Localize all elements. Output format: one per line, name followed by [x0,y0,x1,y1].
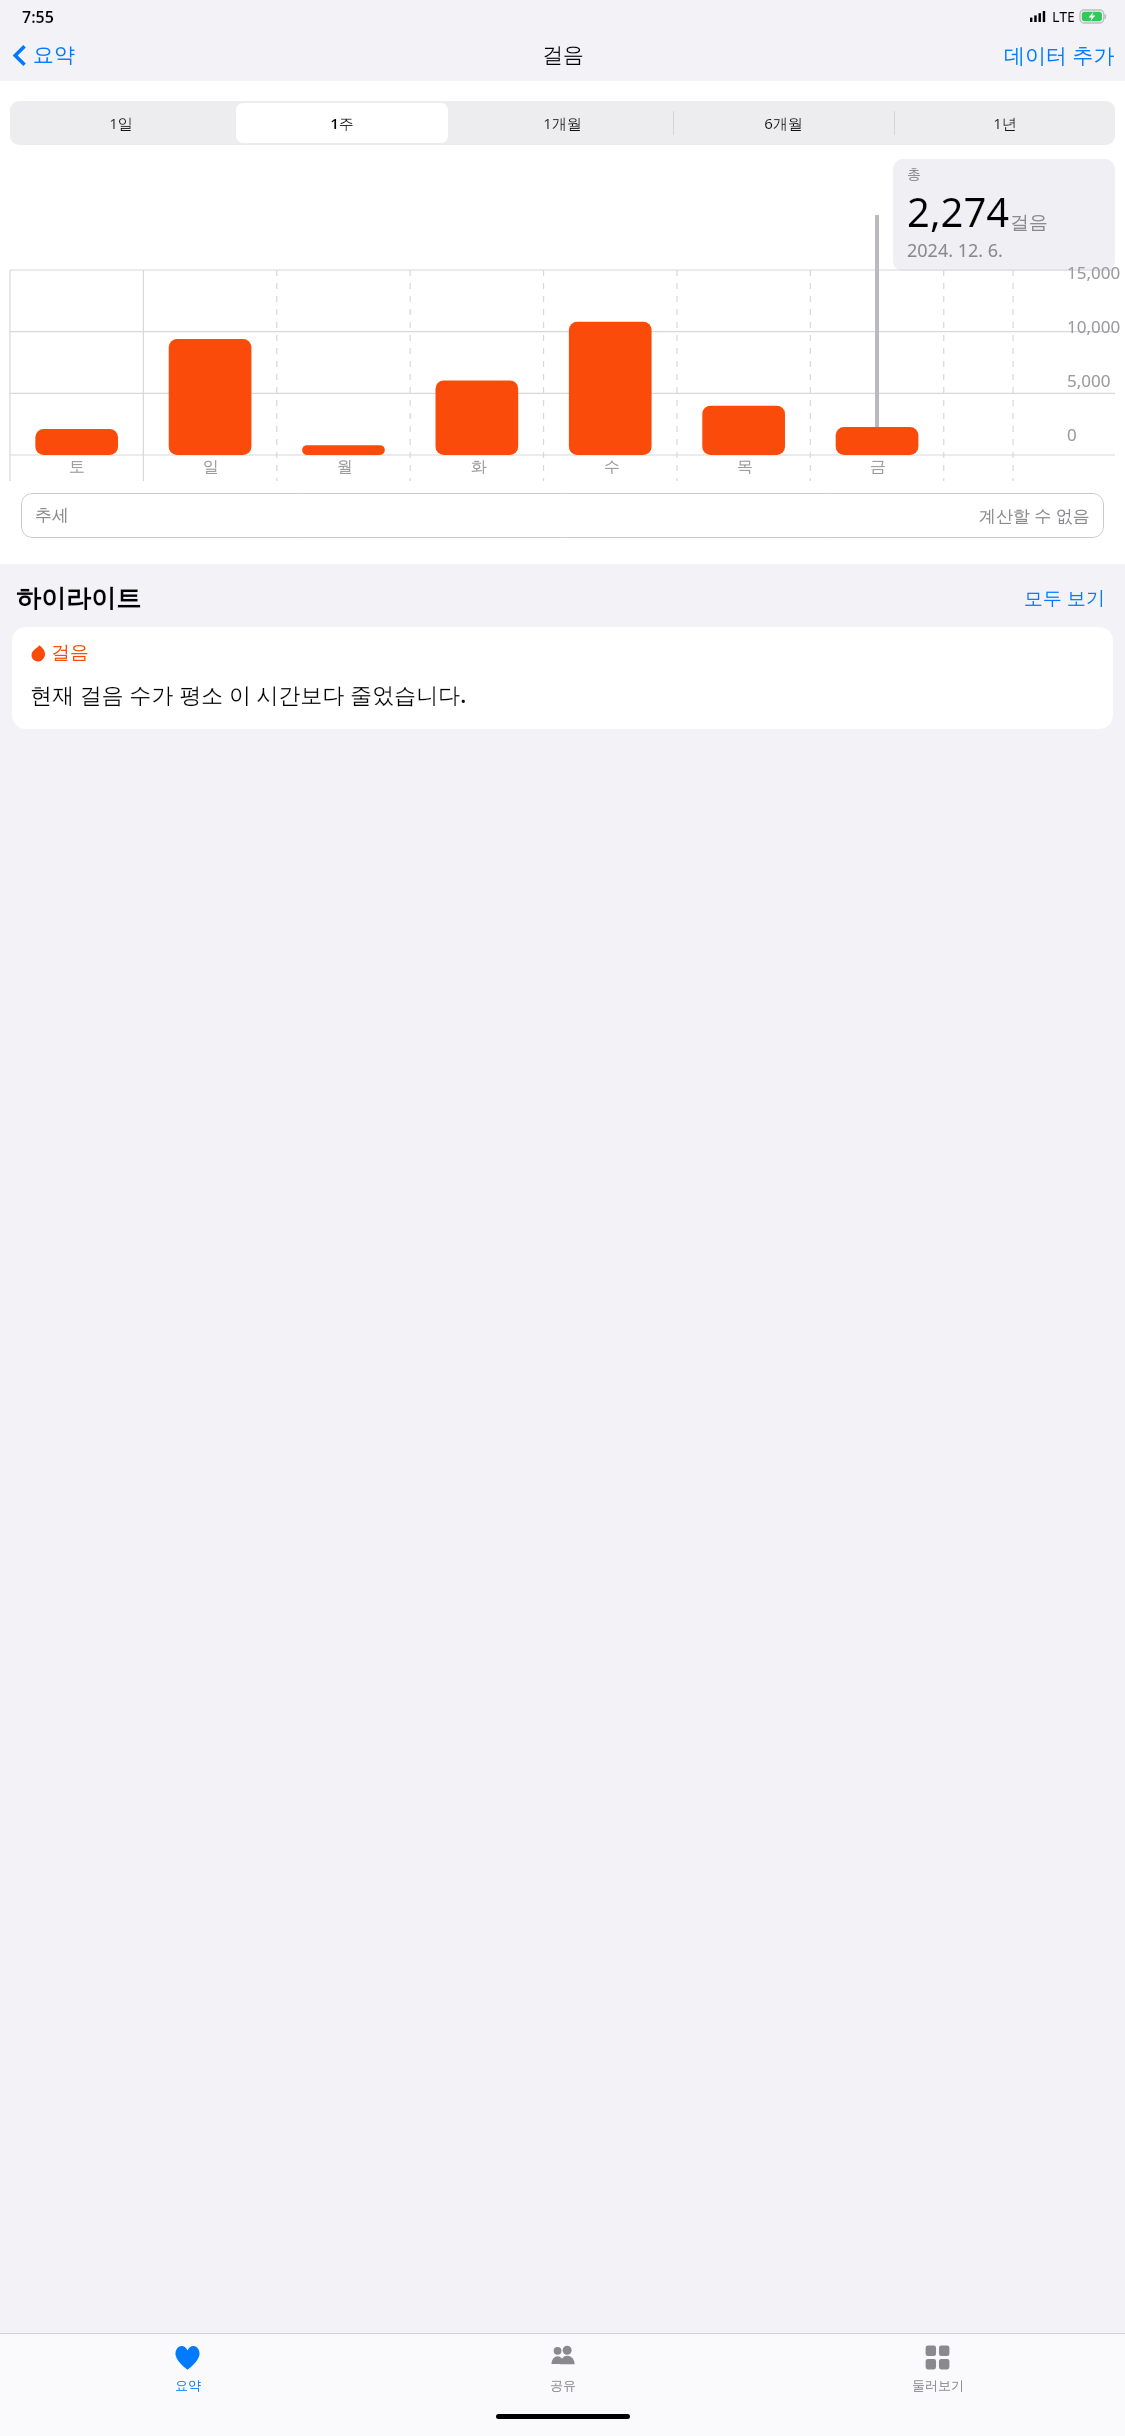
staticText: 걸음 [51,641,89,665]
button[interactable]: 요약 [0,2334,375,2402]
staticText: 2,274 [907,184,1010,238]
staticText: 7:55 [22,6,54,28]
staticText: 현재 걸음 수가 평소 이 시간보다 줄었습니다. [30,679,467,709]
button[interactable]: 공유 [375,2334,750,2402]
staticText: 요약 [175,2377,201,2393]
staticText: 걸음 [542,42,584,68]
staticText: 2024. 12. 6. [907,238,1003,263]
button[interactable]: 6개월 [673,101,894,145]
button[interactable]: 걸음 [12,627,1113,729]
button[interactable]: 둘러보기 [750,2334,1125,2402]
staticText: 6개월 [764,113,803,133]
staticText: 공유 [550,2377,576,2393]
other: 둘러보기 [923,2343,952,2372]
staticText: 금 [870,457,886,477]
staticText: 목 [737,457,753,477]
staticText: 15,000 [1067,261,1121,284]
staticText: 토 [69,457,85,477]
other: 요약 [173,2343,202,2372]
staticText: 5,000 [1067,369,1111,392]
button[interactable]: 요약 [6,38,83,72]
staticText: 수 [604,457,620,477]
staticText: 계산할 수 없음 [979,504,1090,527]
staticText: 총 [907,166,921,184]
staticText: 하이라이트 [16,583,141,614]
staticText: 걸음 [1010,211,1048,235]
button[interactable]: 추세 [21,493,1104,538]
staticText: 요약 [33,42,75,68]
staticText: 화 [471,457,487,477]
staticText: 0 [1067,423,1077,446]
staticText: 1개월 [543,113,582,133]
button[interactable]: 1일 [10,101,231,145]
staticText: LTE [1052,7,1075,26]
staticText: 1주 [330,113,354,133]
button[interactable]: 1년 [894,101,1115,145]
staticText: 일 [203,457,219,477]
staticText: 월 [337,457,353,477]
button[interactable]: 데이터 추가 [994,37,1125,74]
button[interactable]: 1주 [231,101,452,145]
staticText: 10,000 [1067,315,1121,338]
other: 공유 [548,2343,577,2372]
staticText: 1일 [109,113,133,133]
button[interactable]: 모두 보기 [1020,582,1109,614]
button[interactable]: 1개월 [452,101,673,145]
staticText: 추세 [35,505,69,526]
staticText: 1년 [993,113,1017,133]
staticText: 둘러보기 [912,2377,964,2393]
